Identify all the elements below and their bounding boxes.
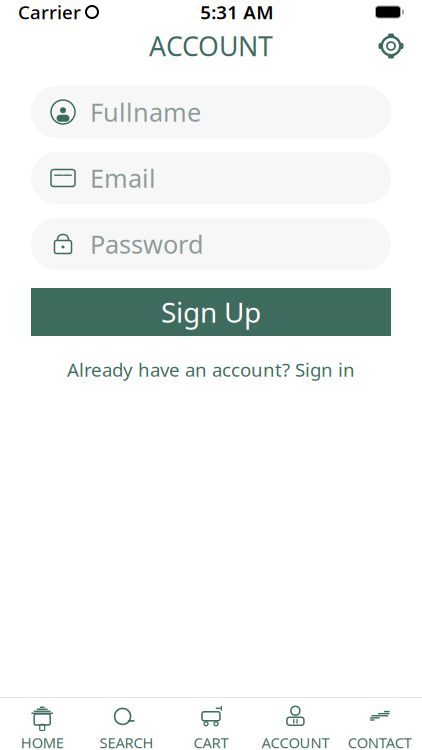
staticText: Email <box>90 161 156 195</box>
button[interactable]: SEARCH <box>84 699 169 750</box>
staticText: CART <box>193 733 228 750</box>
button[interactable]: CART <box>169 699 253 750</box>
staticText: CONTACT <box>348 733 412 750</box>
button[interactable]: Sign Up <box>31 288 391 336</box>
staticText: HOME <box>21 733 64 750</box>
button[interactable]: HOME <box>0 699 84 750</box>
staticText: ACCOUNT <box>149 28 273 64</box>
staticText: Carrier <box>18 0 81 24</box>
button[interactable]: CONTACT <box>338 699 422 750</box>
staticText: ACCOUNT <box>261 733 329 750</box>
button[interactable]: Already have an account? Sign in <box>53 350 369 389</box>
staticText: Already have an account? Sign in <box>67 357 355 382</box>
button[interactable]: Settings <box>370 25 412 67</box>
staticText: 5:31 AM <box>200 0 273 24</box>
staticText: Fullname <box>90 95 201 129</box>
button[interactable]: ACCOUNT <box>253 699 338 750</box>
staticText: Password <box>90 227 204 261</box>
staticText: Sign Up <box>161 293 261 331</box>
staticText: SEARCH <box>100 733 154 750</box>
